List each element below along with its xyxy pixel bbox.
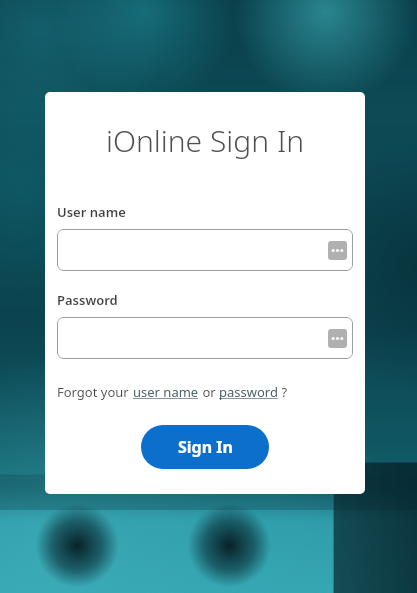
- staticText: Forgot your: [57, 383, 133, 401]
- button[interactable]: Show suggestions: [57, 317, 353, 359]
- staticText: password: [219, 383, 278, 401]
- button[interactable]: Show suggestions: [328, 241, 347, 260]
- button[interactable]: Show suggestions: [328, 329, 347, 348]
- staticText: User name: [57, 203, 126, 221]
- staticText: iOnline Sign In: [106, 120, 305, 161]
- staticText: user name: [133, 383, 199, 401]
- button[interactable]: password: [219, 383, 278, 401]
- staticText: Sign In: [178, 436, 233, 458]
- button[interactable]: user name: [133, 383, 199, 401]
- staticText: Password: [57, 291, 118, 309]
- staticText: or: [199, 383, 219, 401]
- staticText: ?: [278, 383, 288, 401]
- button[interactable]: Show suggestions: [57, 229, 353, 271]
- button[interactable]: Sign In: [141, 425, 269, 469]
